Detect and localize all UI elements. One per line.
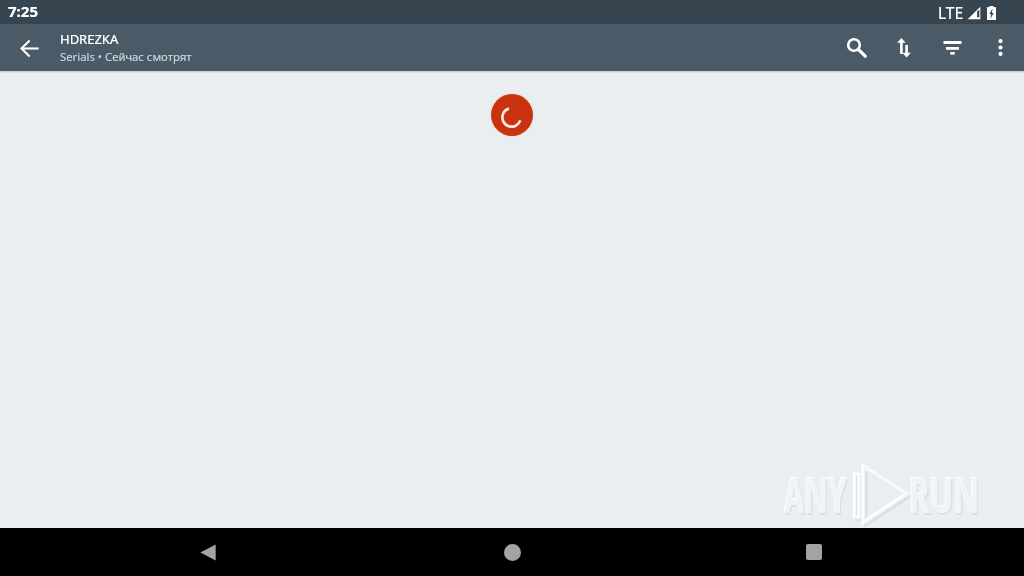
button[interactable]: Back xyxy=(184,528,232,576)
staticText: Serials • Сейчас смотрят xyxy=(60,49,192,64)
button[interactable]: More options xyxy=(977,24,1024,71)
staticText: ANY xyxy=(784,461,847,528)
button[interactable]: Navigate up xyxy=(0,24,59,71)
staticText: RUN xyxy=(908,460,979,527)
staticText: 7:25 xyxy=(8,1,38,21)
staticText: RUN xyxy=(909,461,980,528)
button[interactable]: Sort xyxy=(883,24,930,71)
button[interactable]: Recent apps xyxy=(790,528,838,576)
button[interactable]: Home xyxy=(488,528,536,576)
staticText: LTE xyxy=(938,2,964,23)
other: Battery charging xyxy=(987,6,996,20)
button[interactable]: Filter xyxy=(930,24,977,71)
staticText: ANY xyxy=(785,463,848,530)
button[interactable]: Search xyxy=(836,24,883,71)
staticText: RUN xyxy=(910,463,981,530)
staticText: HDREZKA xyxy=(60,30,119,48)
staticText: ANY xyxy=(783,460,846,527)
other: Mobile signal xyxy=(967,6,981,20)
